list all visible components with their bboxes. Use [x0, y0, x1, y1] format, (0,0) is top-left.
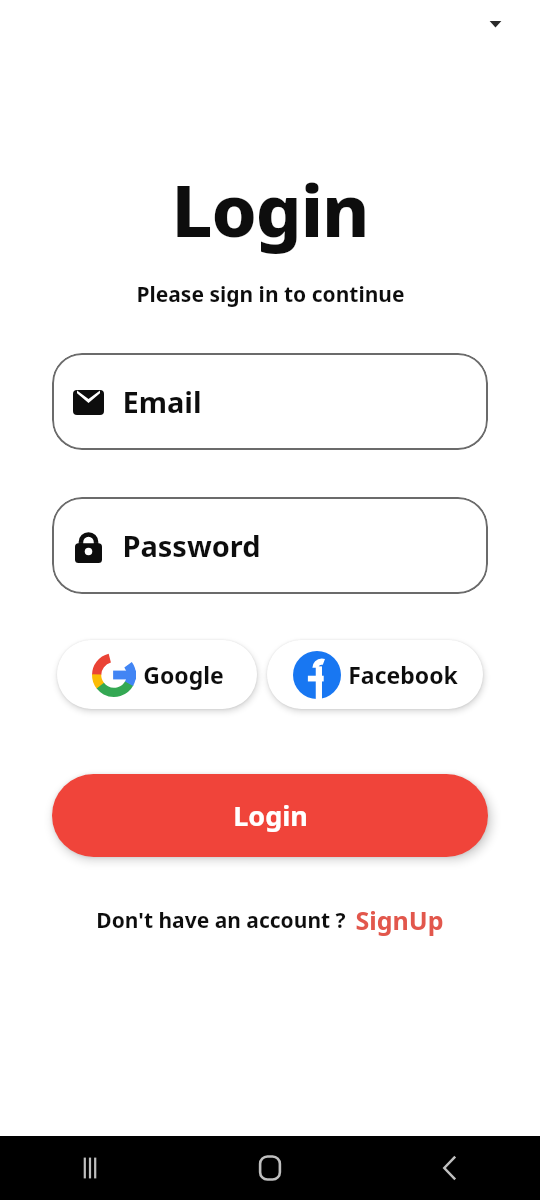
button[interactable]: Home	[180, 1136, 360, 1200]
staticText: Facebook	[348, 659, 458, 690]
button[interactable]: Facebook	[267, 640, 483, 709]
button[interactable]: Login	[52, 774, 488, 857]
button[interactable]: Recent apps	[0, 1136, 180, 1200]
button[interactable]: Password	[52, 497, 488, 594]
staticText: Google	[143, 659, 224, 690]
staticText: Please sign in to continue	[136, 280, 405, 309]
button[interactable]: Email	[52, 353, 488, 450]
button[interactable]: Google	[57, 640, 257, 709]
staticText: Email	[122, 382, 202, 421]
staticText: Login	[171, 160, 369, 258]
button[interactable]: Back	[360, 1136, 540, 1200]
button[interactable]: Don't have an account ?	[90, 899, 450, 941]
staticText: Don't have an account ?	[96, 906, 346, 935]
staticText: Login	[233, 797, 308, 834]
staticText: SignUp	[355, 903, 444, 937]
staticText: Password	[122, 526, 261, 565]
